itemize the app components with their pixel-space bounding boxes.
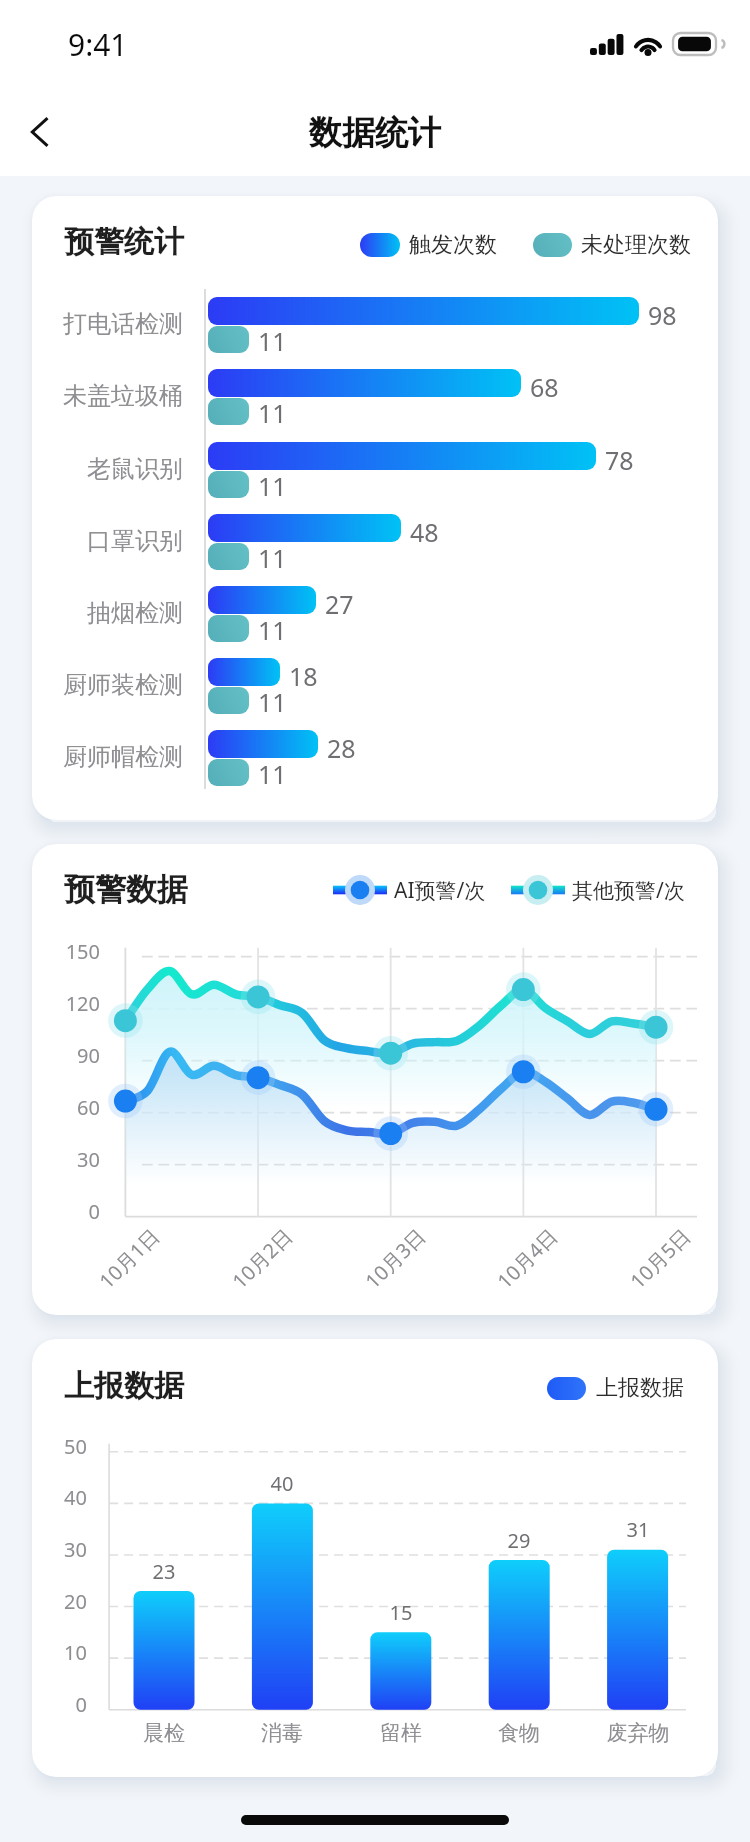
staticText: 68 xyxy=(530,370,559,404)
staticText: 90 xyxy=(32,1042,100,1069)
staticText: 29 xyxy=(449,1527,589,1554)
staticText: AI预警/次 xyxy=(394,876,486,905)
staticText: 60 xyxy=(32,1094,100,1121)
staticText: 30 xyxy=(32,1146,100,1173)
staticText: 10月3日 xyxy=(344,1222,431,1309)
button[interactable]: 其他预警/次 xyxy=(511,874,685,906)
staticText: 78 xyxy=(605,443,634,477)
staticText: 27 xyxy=(325,587,354,621)
staticText: 老鼠识别 xyxy=(36,454,183,484)
staticText: 晨检 xyxy=(94,1720,234,1746)
button[interactable]: 上报数据 xyxy=(547,1374,684,1402)
staticText: 留样 xyxy=(331,1720,471,1746)
staticText: 20 xyxy=(32,1588,87,1615)
button[interactable]: AI预警/次 xyxy=(333,874,486,906)
staticText: 9:41 xyxy=(68,24,128,65)
staticText: 10月2日 xyxy=(211,1222,298,1309)
button[interactable]: 未处理次数 xyxy=(533,231,691,259)
button[interactable]: 触发次数 xyxy=(360,231,497,259)
staticText: 15 xyxy=(331,1599,471,1626)
staticText: 48 xyxy=(410,515,439,549)
staticText: 11 xyxy=(258,541,287,575)
staticText: 120 xyxy=(32,990,100,1017)
staticText: 18 xyxy=(289,659,318,693)
staticText: 数据统计 xyxy=(309,112,441,154)
staticText: 40 xyxy=(212,1470,352,1497)
staticText: 98 xyxy=(648,298,677,332)
staticText: 上报数据 xyxy=(64,1367,184,1405)
staticText: 40 xyxy=(32,1484,87,1511)
staticText: 10月1日 xyxy=(78,1222,165,1309)
staticText: 消毒 xyxy=(212,1720,352,1746)
staticText: 预警数据 xyxy=(64,870,188,909)
staticText: 23 xyxy=(94,1558,234,1585)
staticText: 触发次数 xyxy=(409,231,497,259)
staticText: 11 xyxy=(258,685,287,719)
staticText: 抽烟检测 xyxy=(36,598,183,628)
staticText: 厨师帽检测 xyxy=(36,742,183,772)
staticText: 0 xyxy=(32,1198,100,1225)
button[interactable]: Back xyxy=(4,96,76,168)
staticText: 10 xyxy=(32,1639,87,1666)
staticText: 28 xyxy=(327,731,356,765)
staticText: 10月4日 xyxy=(476,1222,563,1309)
staticText: 口罩识别 xyxy=(36,526,183,556)
staticText: 食物 xyxy=(449,1720,589,1746)
staticText: 30 xyxy=(32,1536,87,1563)
staticText: 未盖垃圾桶 xyxy=(36,381,183,411)
staticText: 打电话检测 xyxy=(36,309,183,339)
staticText: 31 xyxy=(568,1516,708,1543)
staticText: 11 xyxy=(258,469,287,503)
staticText: 其他预警/次 xyxy=(572,876,685,905)
staticText: 50 xyxy=(32,1433,87,1460)
staticText: 废弃物 xyxy=(568,1720,708,1746)
staticText: 150 xyxy=(32,938,100,965)
staticText: 上报数据 xyxy=(596,1374,684,1402)
staticText: 10月5日 xyxy=(609,1222,696,1309)
staticText: 厨师装检测 xyxy=(36,670,183,700)
staticText: 11 xyxy=(258,396,287,430)
staticText: 未处理次数 xyxy=(581,231,691,259)
staticText: 11 xyxy=(258,757,287,791)
staticText: 0 xyxy=(32,1691,87,1718)
staticText: 11 xyxy=(258,324,287,358)
staticText: 预警统计 xyxy=(64,223,184,261)
staticText: 11 xyxy=(258,613,287,647)
